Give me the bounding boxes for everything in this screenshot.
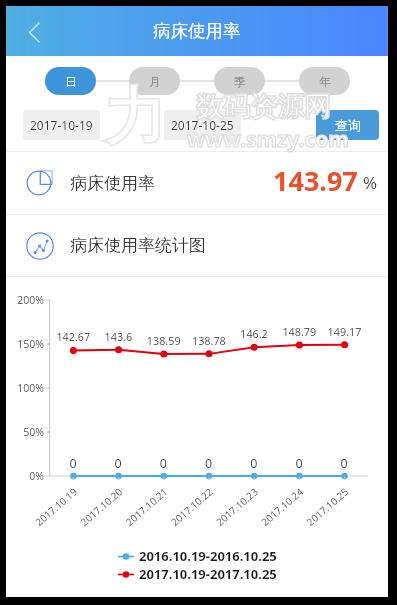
button[interactable]: 查询 xyxy=(316,110,379,140)
staticText: 病床使用率统计图 xyxy=(70,235,206,256)
button[interactable]: 月 xyxy=(129,67,180,95)
button[interactable]: 2017-10-25 xyxy=(164,110,241,140)
staticText: 季 xyxy=(234,74,246,89)
staticText: 143.97 xyxy=(273,162,358,199)
staticText: 2017.10.19-2017.10.25 xyxy=(139,565,277,583)
staticText: % xyxy=(363,171,378,194)
staticText: 2016.10.19-2016.10.25 xyxy=(139,547,277,565)
staticText: 日 xyxy=(65,74,77,89)
staticText: 年 xyxy=(319,74,331,89)
button[interactable]: 日 xyxy=(45,67,96,95)
button[interactable]: 季 xyxy=(214,67,265,95)
button[interactable]: 2017-10-19 xyxy=(23,110,100,140)
staticText: 2017-10-19 xyxy=(30,117,93,133)
button[interactable]: 年 xyxy=(299,67,350,95)
staticText: 病床使用率 xyxy=(153,20,241,42)
staticText: 病床使用率 xyxy=(70,173,155,194)
staticText: - xyxy=(130,117,134,133)
button[interactable]: Back xyxy=(6,9,50,53)
staticText: 2017-10-25 xyxy=(171,117,234,133)
staticText: 查询 xyxy=(335,117,361,133)
staticText: 月 xyxy=(149,74,161,89)
